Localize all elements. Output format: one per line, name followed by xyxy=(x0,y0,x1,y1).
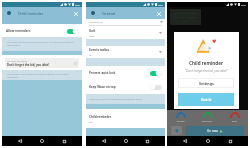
staticText: Stop xyxy=(232,119,238,122)
staticText: 4:47 xyxy=(75,3,80,6)
staticText: Settings xyxy=(199,81,214,86)
staticText: Custom message xyxy=(7,59,28,62)
button[interactable]: Send ETA xyxy=(194,110,221,122)
button[interactable]: Home xyxy=(122,137,130,145)
button[interactable]: Home xyxy=(38,137,46,145)
staticText: Unit xyxy=(89,29,96,33)
staticText: Add a phone number when you send your ET… xyxy=(173,11,198,23)
staticText: Child reminder xyxy=(18,11,44,16)
button[interactable]: Prevent auto lock xyxy=(86,66,165,80)
button[interactable]: Back xyxy=(181,137,189,145)
button[interactable]: Recent apps xyxy=(143,137,151,145)
staticText: 4:47 xyxy=(241,3,246,6)
button[interactable]: Home xyxy=(204,137,212,145)
staticText: English (US) xyxy=(89,20,103,23)
button[interactable]: Got it xyxy=(178,93,234,106)
button[interactable]: Events radius xyxy=(86,46,165,58)
staticText: Child reminder xyxy=(189,60,224,66)
staticText: Send ETA xyxy=(202,119,213,122)
button[interactable]: Custom message xyxy=(5,58,79,68)
staticText: 4:47 xyxy=(158,3,163,6)
staticText: Let Waze remind you to check your car wh… xyxy=(7,40,74,47)
staticText: Child reminder xyxy=(89,115,112,119)
button[interactable]: Report xyxy=(171,126,182,135)
staticText: Got it xyxy=(201,97,212,102)
button[interactable]: Back xyxy=(16,137,24,145)
staticText: mile xyxy=(89,34,95,37)
button[interactable]: English (US) xyxy=(86,19,165,25)
staticText: Customize your child reminder by adding … xyxy=(7,72,69,79)
button[interactable]: On xyxy=(67,27,79,35)
button[interactable]: Keep Waze on top xyxy=(86,80,165,94)
button[interactable]: Close xyxy=(71,9,80,18)
staticText: Prevent auto lock xyxy=(89,71,116,75)
staticText: Keep Waze on top xyxy=(89,85,116,89)
staticText: Events radius xyxy=(89,48,110,52)
staticText: Routes xyxy=(177,119,185,122)
staticText: Takes you back to Waze when receiving a … xyxy=(89,97,142,100)
staticText: Go now xyxy=(207,129,218,133)
button[interactable]: Recent apps xyxy=(226,137,234,145)
button[interactable]: Navigate up xyxy=(89,9,97,17)
staticText: Don't forget the kid, you idiot! xyxy=(7,63,50,67)
button[interactable]: Navigate up xyxy=(5,9,13,17)
staticText: All xyxy=(89,53,92,56)
button[interactable]: Allow reminders xyxy=(2,24,82,37)
staticText: "Don't forget the kid, you idiot! " xyxy=(185,69,229,73)
button[interactable]: Recent apps xyxy=(60,137,68,145)
button[interactable]: Settings xyxy=(178,78,234,88)
button[interactable]: Go now xyxy=(186,126,244,136)
staticText: General xyxy=(102,11,116,16)
staticText: On xyxy=(89,120,93,123)
button[interactable]: On xyxy=(150,69,162,77)
button[interactable]: Routes xyxy=(167,110,194,122)
button[interactable]: Stop xyxy=(221,110,248,122)
button[interactable]: Child reminder xyxy=(86,109,165,128)
button[interactable]: Off xyxy=(150,83,162,91)
button[interactable]: Close xyxy=(154,9,163,18)
staticText: Allow reminders xyxy=(6,29,31,33)
button[interactable]: Unit xyxy=(86,26,165,39)
button[interactable]: Back xyxy=(100,137,108,145)
